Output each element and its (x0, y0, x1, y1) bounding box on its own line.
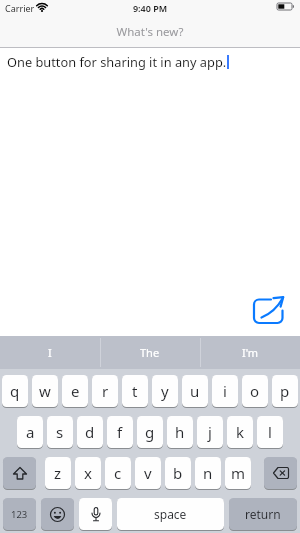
button[interactable]: g (137, 416, 163, 448)
button[interactable]: i (212, 375, 238, 407)
staticText: d (85, 422, 95, 442)
staticText: y (161, 381, 169, 401)
staticText: return (245, 506, 281, 522)
button[interactable]: I (0, 336, 100, 369)
button[interactable]: s (47, 416, 73, 448)
button[interactable]: return (229, 498, 297, 530)
staticText: q (10, 381, 20, 401)
staticText: What's new? (0, 24, 300, 40)
button[interactable]: l (257, 416, 283, 448)
button[interactable]: d (77, 416, 103, 448)
button[interactable]: k (227, 416, 253, 448)
staticText: o (250, 381, 260, 401)
staticText: b (173, 463, 183, 483)
staticText: z (54, 463, 62, 483)
staticText: The (140, 345, 160, 360)
staticText: p (280, 381, 290, 401)
button[interactable]: x (75, 457, 101, 489)
button[interactable]: v (135, 457, 161, 489)
button[interactable]: p (272, 375, 298, 407)
button[interactable] (250, 293, 288, 327)
staticText: w (39, 381, 51, 401)
staticText: I (48, 345, 52, 360)
button[interactable]: o (242, 375, 268, 407)
staticText: g (145, 422, 155, 442)
button[interactable]: q (2, 375, 28, 407)
staticText: x (84, 463, 92, 483)
staticText: h (175, 422, 185, 442)
button[interactable]: h (167, 416, 193, 448)
staticText: v (144, 463, 152, 483)
staticText: s (56, 422, 64, 442)
button[interactable] (41, 498, 74, 530)
staticText: m (231, 463, 246, 483)
staticText: u (190, 381, 200, 401)
button[interactable]: j (197, 416, 223, 448)
staticText: Carrier (5, 2, 35, 14)
button[interactable]: e (62, 375, 88, 407)
staticText: j (208, 422, 212, 442)
staticText: 123 (11, 508, 28, 521)
button[interactable]: u (182, 375, 208, 407)
button[interactable]: 123 (3, 498, 36, 530)
button[interactable]: t (122, 375, 148, 407)
staticText: One button for sharing it in any app. (7, 53, 227, 70)
button[interactable] (264, 457, 297, 489)
staticText: k (236, 422, 245, 442)
staticText: i (223, 381, 227, 401)
button[interactable]: c (105, 457, 131, 489)
staticText: 9:40 PM (0, 2, 300, 14)
staticText: c (114, 463, 122, 483)
button[interactable]: space (117, 498, 224, 530)
button[interactable]: The (100, 336, 200, 369)
staticText: e (71, 381, 80, 401)
staticText: n (203, 463, 213, 483)
staticText: f (117, 422, 123, 442)
staticText: l (268, 422, 272, 442)
staticText: a (26, 422, 35, 442)
staticText: r (102, 381, 109, 401)
button[interactable] (79, 498, 112, 530)
button[interactable]: w (32, 375, 58, 407)
button[interactable]: f (107, 416, 133, 448)
button[interactable]: y (152, 375, 178, 407)
staticText: I'm (242, 345, 259, 360)
button[interactable]: a (17, 416, 43, 448)
button[interactable] (3, 457, 36, 489)
staticText: space (154, 506, 187, 522)
button[interactable]: z (45, 457, 71, 489)
button[interactable]: b (165, 457, 191, 489)
button[interactable]: m (225, 457, 251, 489)
button[interactable]: r (92, 375, 118, 407)
button[interactable]: n (195, 457, 221, 489)
button[interactable]: I'm (200, 336, 300, 369)
staticText: t (132, 381, 138, 401)
